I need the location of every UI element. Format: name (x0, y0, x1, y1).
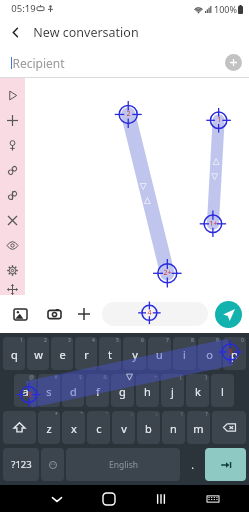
button[interactable]: & (86, 374, 109, 407)
button[interactable]: ! (162, 411, 185, 444)
button[interactable]: 9 (198, 337, 221, 370)
staticText: m (193, 421, 204, 436)
button[interactable]: English (66, 448, 180, 481)
button[interactable]: Add recipient (225, 54, 242, 71)
button[interactable]: 0 (223, 337, 246, 370)
button[interactable]: Home (83, 485, 135, 512)
staticText: f (96, 384, 100, 399)
button[interactable]: ( (161, 374, 184, 407)
staticText: . (191, 458, 194, 472)
button[interactable]: Next (205, 448, 246, 481)
button[interactable]: 5 (99, 337, 121, 370)
button[interactable]: Hide keyboard (30, 485, 83, 512)
staticText: " (80, 411, 83, 418)
staticText: y (132, 347, 138, 362)
button[interactable]: Camera (41, 301, 67, 327)
button[interactable]: 8 (173, 337, 196, 370)
staticText: 3 (68, 337, 71, 344)
button[interactable]: @ (14, 374, 36, 407)
button[interactable]: ? (187, 411, 210, 444)
staticText: d (70, 384, 77, 399)
button[interactable] (102, 302, 208, 326)
button[interactable]: Keyboard layout (187, 485, 239, 512)
button[interactable]: Visibility (0, 233, 25, 258)
staticText: u (156, 347, 163, 362)
staticText: ; (156, 411, 158, 418)
staticText: - (130, 374, 132, 381)
staticText: g (119, 384, 126, 399)
staticText: New conversation (33, 24, 139, 41)
button[interactable]: - (111, 374, 134, 407)
button[interactable]: 3 (51, 337, 73, 370)
staticText: o (206, 347, 213, 362)
button[interactable]: 2 (27, 337, 49, 370)
staticText: b (145, 421, 152, 436)
staticText: 6 (141, 337, 144, 344)
button[interactable]: Shift (3, 411, 36, 444)
button[interactable]: Recent apps (135, 485, 187, 512)
button[interactable]: Gallery (7, 301, 33, 327)
button[interactable]: + (136, 374, 159, 407)
button[interactable]: $ (62, 374, 84, 407)
button[interactable]: Unlink (0, 183, 25, 208)
button[interactable]: Send (215, 301, 242, 328)
staticText: h (144, 384, 151, 399)
staticText: c (96, 421, 102, 436)
button[interactable]: Link (0, 158, 25, 183)
button[interactable]: " (62, 411, 85, 444)
staticText: & (103, 374, 107, 381)
button[interactable]: Select (0, 83, 25, 108)
staticText: ) (205, 374, 207, 381)
staticText: 1 (20, 337, 23, 344)
button[interactable]: Pin (0, 133, 25, 158)
button[interactable]: More (71, 301, 97, 327)
button[interactable]: Emoji (41, 448, 64, 481)
staticText: z (46, 421, 52, 436)
button[interactable]: Settings (0, 258, 25, 283)
staticText: 3 (27, 390, 32, 400)
staticText: s (46, 384, 52, 399)
button[interactable]: Add (0, 108, 25, 133)
staticText: 100% (214, 3, 237, 15)
button[interactable]: Back (0, 17, 31, 48)
staticText: 5 (116, 337, 119, 344)
staticText: 1+ (209, 219, 218, 229)
button[interactable]: # (38, 374, 60, 407)
staticText: w (34, 347, 43, 362)
staticText: 05:19 (11, 2, 36, 15)
button[interactable]: Delete (0, 208, 25, 233)
staticText: t (108, 347, 112, 362)
button[interactable]: 7 (148, 337, 171, 370)
button[interactable]: ?123 (3, 448, 39, 481)
staticText: 7 (166, 337, 169, 344)
staticText: 0 (241, 337, 244, 344)
staticText: ? (205, 411, 208, 418)
button[interactable]: * (38, 411, 60, 444)
button[interactable]: ) (186, 374, 209, 407)
button[interactable]: 4 (75, 337, 97, 370)
staticText: i (183, 347, 186, 362)
staticText: x (71, 421, 77, 436)
button[interactable]: : (112, 411, 135, 444)
staticText: + (154, 374, 157, 381)
button[interactable]: Backspace (212, 411, 246, 444)
button[interactable]: ' (87, 411, 110, 444)
staticText: $ (79, 374, 82, 381)
staticText: # (54, 374, 58, 381)
staticText: a (22, 384, 29, 399)
button[interactable]: Period (182, 448, 203, 481)
staticText: 1 (217, 115, 222, 125)
button[interactable]: 6 (123, 337, 146, 370)
staticText: ?123 (11, 458, 32, 471)
staticText: 4 (92, 337, 95, 344)
button[interactable]: l (211, 374, 234, 407)
staticText: 4 (147, 308, 152, 318)
button[interactable]: ; (137, 411, 160, 444)
staticText: 2 (126, 109, 131, 119)
staticText: k (195, 384, 201, 399)
button[interactable]: 1 (3, 337, 25, 370)
staticText: l (221, 384, 224, 399)
staticText: 8 (191, 337, 194, 344)
button[interactable]: Move (0, 283, 25, 295)
staticText: English (109, 459, 138, 471)
